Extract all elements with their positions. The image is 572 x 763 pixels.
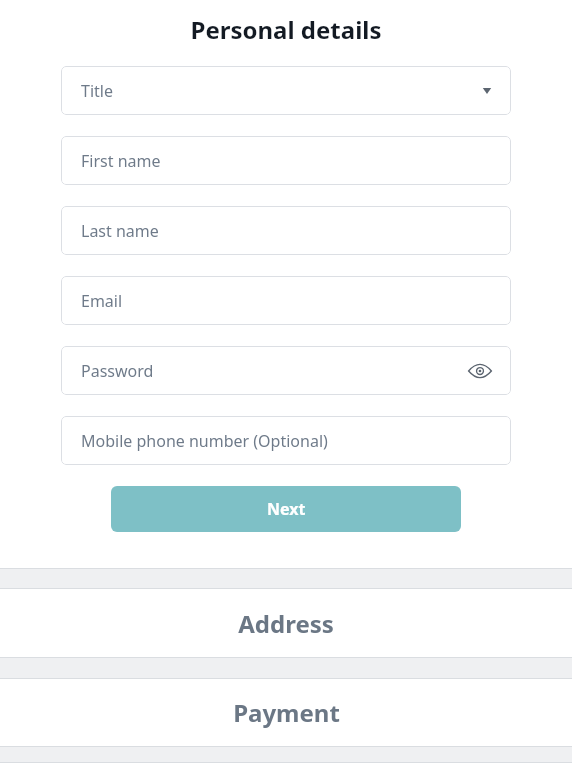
staticText: Title: [81, 80, 113, 102]
button[interactable]: Address: [0, 589, 572, 657]
staticText: First name: [81, 150, 161, 172]
staticText: Personal details: [0, 13, 572, 45]
button[interactable]: Show password: [465, 356, 495, 386]
staticText: Email: [81, 290, 123, 312]
button[interactable]: First name: [61, 136, 511, 185]
button[interactable]: Last name: [61, 206, 511, 255]
button[interactable]: Mobile phone number (Optional): [61, 416, 511, 465]
button[interactable]: Password: [61, 346, 511, 395]
staticText: Last name: [81, 220, 159, 242]
button[interactable]: Payment: [0, 679, 572, 746]
button[interactable]: Next: [111, 486, 461, 532]
staticText: Password: [81, 360, 154, 382]
staticText: Payment: [233, 696, 340, 729]
button[interactable]: Title dropdown: [61, 66, 511, 115]
button[interactable]: Email: [61, 276, 511, 325]
staticText: Next: [267, 498, 306, 520]
staticText: Address: [238, 607, 334, 640]
staticText: Mobile phone number (Optional): [81, 430, 328, 452]
